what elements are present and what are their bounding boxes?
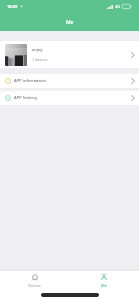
staticText: APP Setting (14, 95, 37, 101)
button[interactable]: Me (69, 271, 139, 290)
staticText: 1 devices (32, 57, 48, 62)
staticText: 4G (115, 4, 120, 9)
button[interactable]: enjoy (0, 41, 139, 68)
button[interactable]: APP information (0, 74, 139, 88)
staticText: Me (66, 19, 74, 26)
button[interactable]: APP Setting (0, 91, 139, 105)
staticText: enjoy (32, 47, 43, 52)
button[interactable]: Device (0, 271, 69, 290)
staticText: 18:09 (7, 4, 18, 9)
staticText: Me (101, 283, 107, 288)
staticText: Device (28, 283, 41, 288)
staticText: APP information (14, 78, 47, 84)
